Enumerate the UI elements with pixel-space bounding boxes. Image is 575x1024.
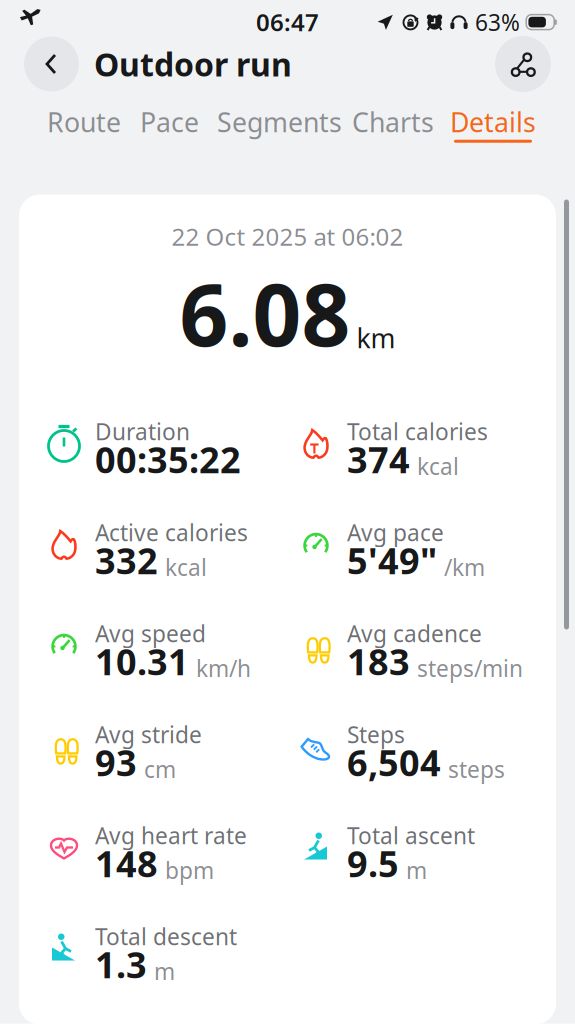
staticText: cm xyxy=(144,754,176,784)
staticText: 5'49" xyxy=(347,536,437,584)
staticText: Route xyxy=(47,104,121,140)
staticText: /km xyxy=(444,552,485,582)
staticText: 1.3 xyxy=(95,940,147,988)
staticText: km xyxy=(356,320,395,356)
button[interactable]: Back xyxy=(24,36,79,91)
staticText: steps xyxy=(448,754,505,784)
staticText: 374 xyxy=(347,435,410,483)
staticText: m xyxy=(406,855,427,885)
staticText: 332 xyxy=(95,536,158,584)
staticText: 183 xyxy=(347,637,410,685)
button[interactable]: Charts xyxy=(352,91,434,155)
staticText: kcal xyxy=(417,451,459,481)
staticText: 63% xyxy=(475,7,520,37)
staticText: Total descent xyxy=(95,921,237,951)
staticText: 10.31 xyxy=(95,637,189,685)
staticText: Pace xyxy=(140,104,199,140)
staticText: Avg stride xyxy=(95,719,202,749)
staticText: 93 xyxy=(95,738,137,786)
staticText: Avg cadence xyxy=(347,618,482,648)
staticText: steps/min xyxy=(417,653,523,683)
staticText: 6.08 xyxy=(179,256,350,370)
staticText: Avg speed xyxy=(95,618,206,648)
staticText: Total ascent xyxy=(347,820,475,850)
staticText: Total calories xyxy=(347,416,488,446)
button[interactable]: Details xyxy=(450,91,536,155)
staticText: Details xyxy=(450,104,536,140)
staticText: 22 Oct 2025 at 06:02 xyxy=(171,220,403,252)
button[interactable]: Segments xyxy=(217,91,342,155)
staticText: Avg heart rate xyxy=(95,820,247,850)
staticText: m xyxy=(154,956,175,986)
staticText: Steps xyxy=(347,719,405,749)
staticText: Avg pace xyxy=(347,517,444,547)
button[interactable]: Pace xyxy=(140,91,199,155)
staticText: kcal xyxy=(165,552,207,582)
staticText: Duration xyxy=(95,416,190,446)
staticText: 00:35:22 xyxy=(95,435,241,483)
button[interactable]: Share xyxy=(495,36,551,92)
staticText: 06:47 xyxy=(256,6,319,38)
staticText: bpm xyxy=(165,855,214,885)
staticText: Active calories xyxy=(95,517,248,547)
staticText: km/h xyxy=(196,653,251,683)
staticText: Segments xyxy=(217,104,342,140)
staticText: 6,504 xyxy=(347,738,441,786)
button[interactable]: Route xyxy=(47,91,121,155)
staticText: 148 xyxy=(95,839,158,887)
staticText: Charts xyxy=(352,104,434,140)
staticText: Outdoor run xyxy=(94,43,292,85)
staticText: 9.5 xyxy=(347,839,399,887)
